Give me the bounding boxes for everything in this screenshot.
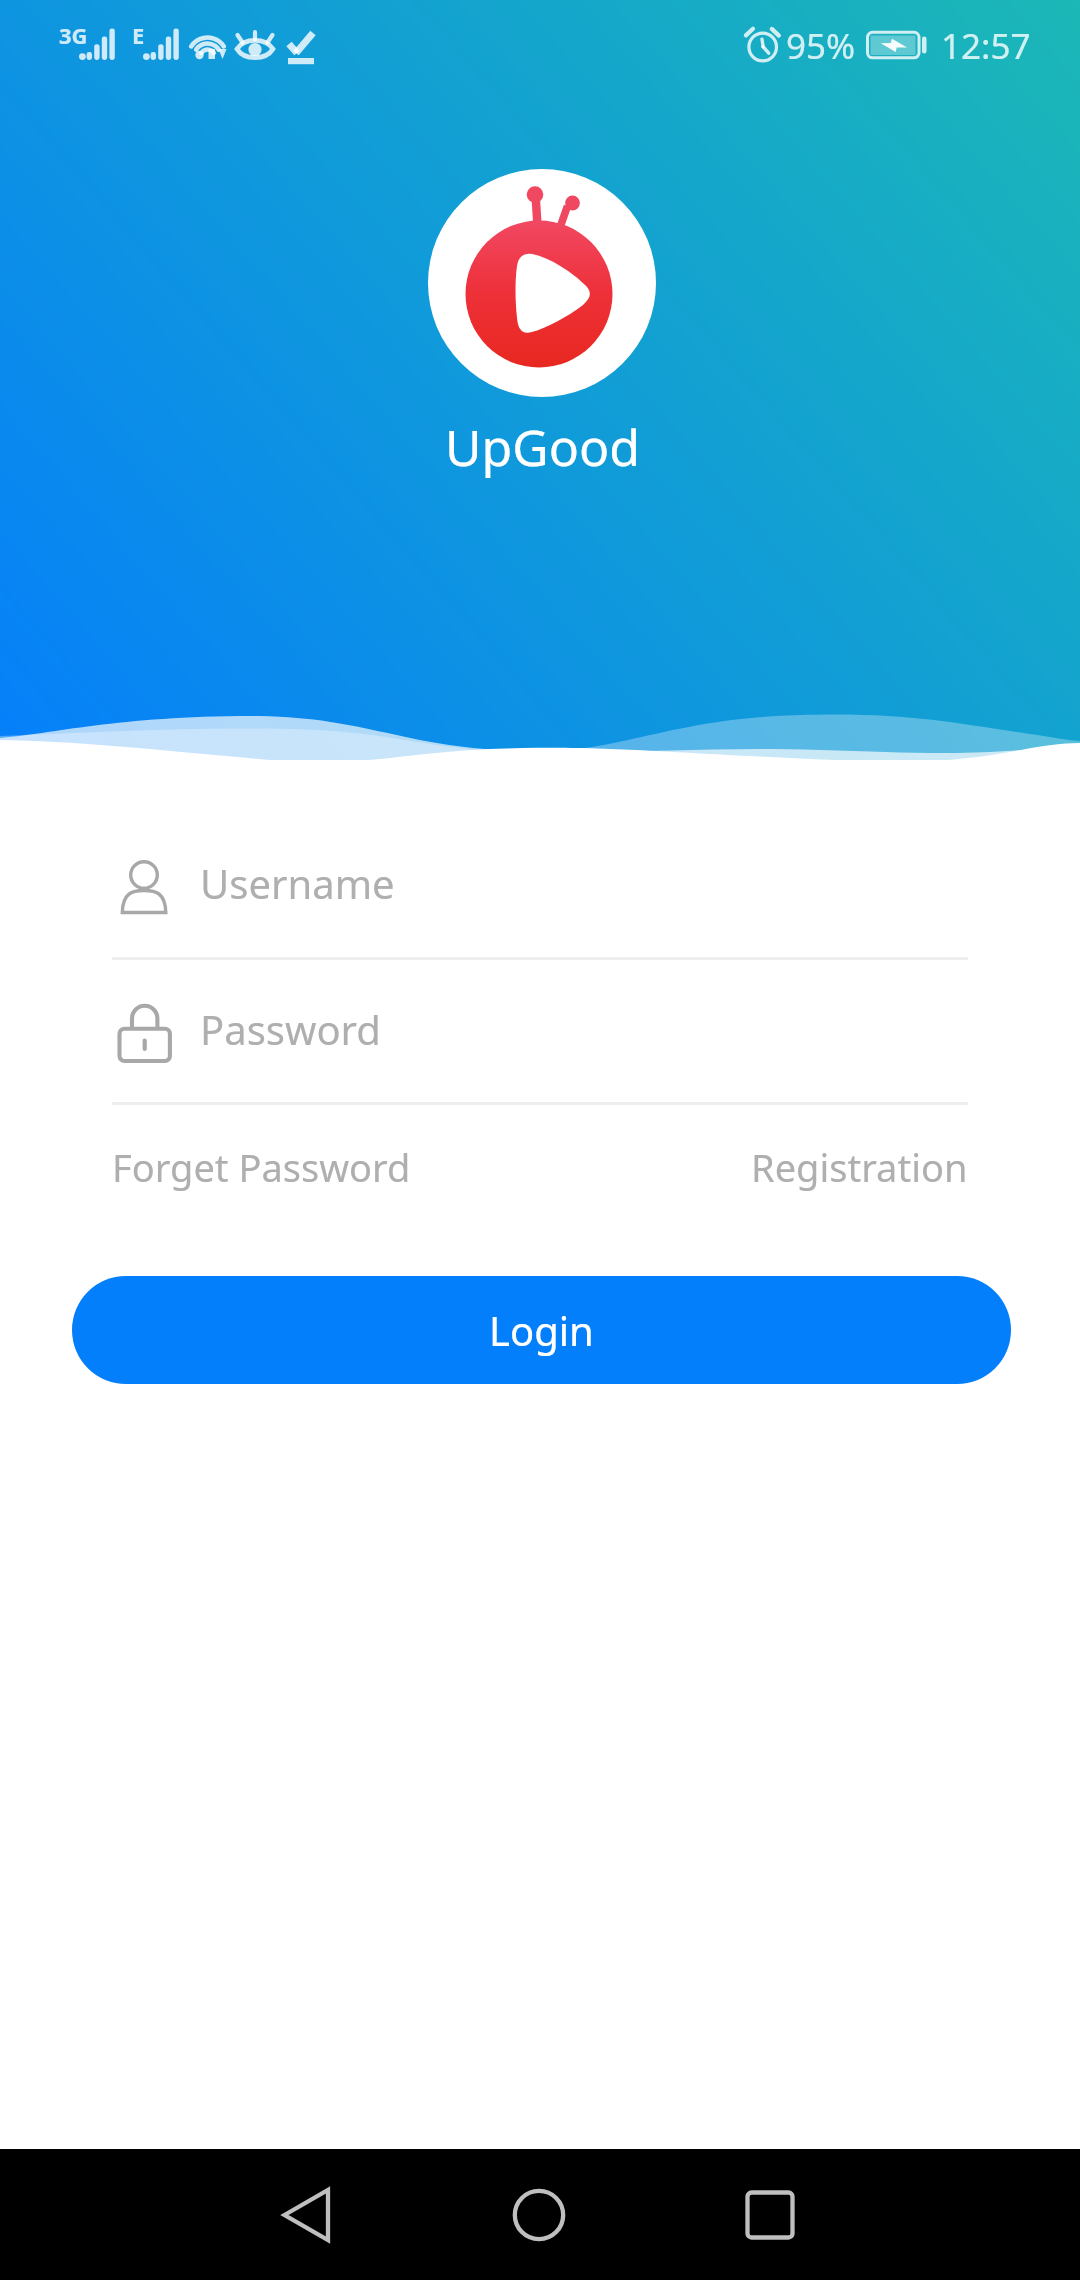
button[interactable]: Registration [751,1141,968,1193]
button[interactable]: Password [112,960,968,1102]
staticText: Username [200,856,395,910]
button[interactable]: Back [242,2149,372,2280]
staticText: Password [200,1002,381,1056]
staticText: 12:57 [941,22,1031,70]
button[interactable]: Username [112,815,968,957]
button[interactable]: Home [474,2149,604,2280]
staticText: Registration [751,1141,968,1193]
button[interactable]: Login [72,1276,1011,1384]
staticText: Login [489,1303,594,1357]
button[interactable]: Forget Password [112,1141,411,1193]
staticText: 95% [786,22,856,70]
staticText: Forget Password [112,1141,411,1193]
staticText: UpGood [445,413,640,481]
button[interactable]: Recent apps [705,2149,835,2280]
staticText: 3G [59,20,88,50]
staticText: E [132,20,145,50]
